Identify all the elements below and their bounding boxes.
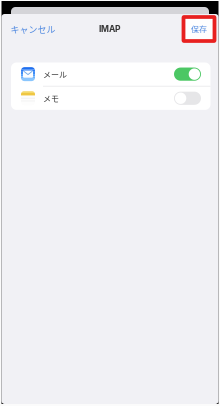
staticText: キャンセル [10, 22, 55, 35]
staticText: メール [43, 68, 67, 80]
staticText: IMAP [99, 24, 121, 34]
button[interactable]: 保存 [183, 17, 218, 41]
button[interactable]: メール [11, 62, 210, 86]
button[interactable]: キャンセル [1, 17, 63, 40]
staticText: 保存 [191, 23, 207, 35]
button[interactable]: メモ [11, 87, 210, 110]
staticText: メモ [43, 92, 59, 104]
